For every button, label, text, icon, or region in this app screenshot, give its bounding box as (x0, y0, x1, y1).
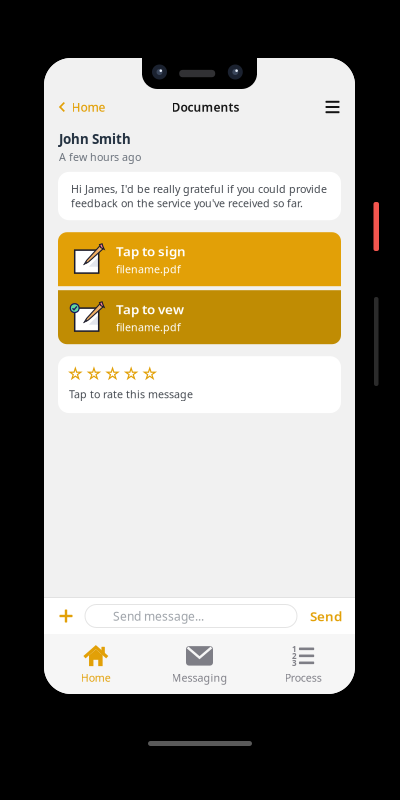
staticText: Process (285, 671, 322, 685)
button[interactable]: 1 (251, 634, 355, 694)
button[interactable]: Tap to sign (58, 232, 341, 286)
staticText: Tap to vew (116, 300, 184, 318)
staticText: John Smith (59, 130, 131, 148)
staticText: Tap to sign (116, 242, 186, 260)
staticText: Documents (171, 99, 239, 115)
button[interactable]: Send (310, 599, 342, 633)
staticText: 1 (292, 643, 297, 654)
button[interactable]: Messaging (148, 634, 251, 694)
staticText: filename.pdf (116, 262, 181, 276)
staticText: 3 (292, 657, 297, 668)
staticText: Send (310, 607, 342, 625)
staticText: Home (71, 99, 105, 115)
button[interactable]: Add attachment (53, 598, 79, 634)
staticText: Home (81, 671, 111, 685)
staticText: Messaging (171, 671, 227, 685)
button[interactable]: Home (44, 634, 148, 694)
staticText: filename.pdf (116, 320, 181, 334)
button[interactable]: Tap to vew (58, 290, 341, 344)
button[interactable]: Home (44, 90, 115, 124)
staticText: Hi James, I'd be really grateful if you … (71, 182, 327, 210)
staticText: 2 (292, 650, 297, 661)
button[interactable]: Menu (315, 90, 355, 124)
staticText: Tap to rate this message (69, 387, 193, 401)
staticText: A few hours ago (59, 150, 141, 164)
staticText: Send message... (113, 608, 204, 624)
